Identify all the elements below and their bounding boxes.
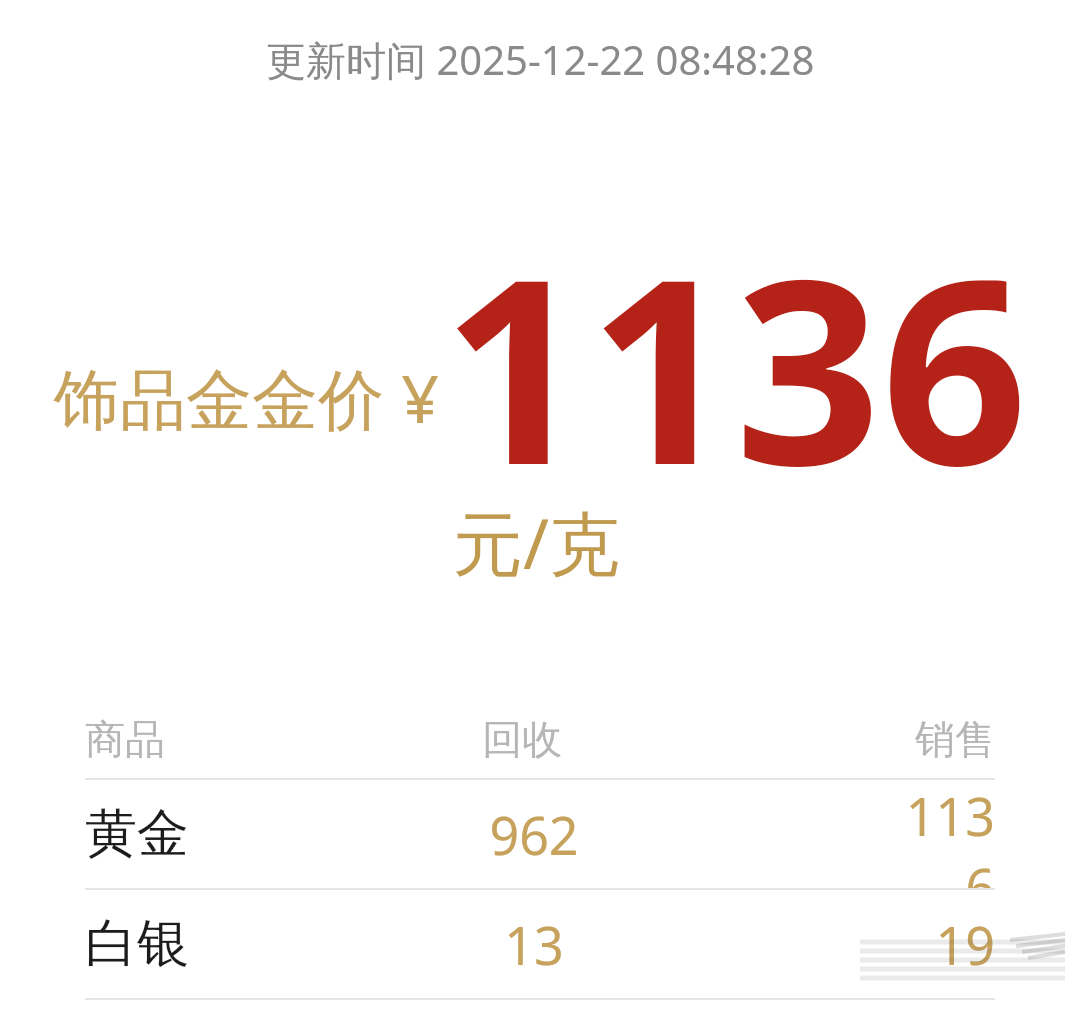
staticText: 饰品金金价 ¥ (54, 352, 439, 442)
staticText: 13 (504, 909, 564, 980)
staticText: 1136 (442, 190, 1028, 539)
button[interactable]: 白银 (0, 890, 1080, 998)
button[interactable]: 黄金 (0, 780, 1080, 888)
staticText: 商品 (85, 714, 165, 764)
other: Watermark (0, 0, 1080, 1015)
staticText: 19 (935, 909, 995, 980)
button[interactable]: 更新时间 2025-12-22 08:48:28 (0, 32, 1080, 87)
staticText: 962 (489, 799, 579, 870)
staticText: 1136 (880, 780, 995, 888)
staticText: 白银 (85, 911, 189, 977)
staticText: 元/克 (453, 494, 620, 590)
staticText: 销售 (915, 714, 995, 764)
staticText: 黄金 (85, 801, 189, 867)
staticText: 更新时间 2025-12-22 08:48:28 (266, 32, 815, 87)
staticText: 回收 (482, 714, 562, 764)
button[interactable]: 商品 (0, 700, 1080, 778)
